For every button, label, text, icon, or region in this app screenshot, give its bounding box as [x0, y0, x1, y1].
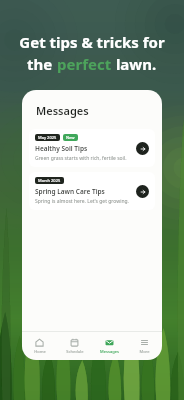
staticText: lawn.	[112, 54, 157, 74]
button[interactable]: Home	[22, 336, 57, 356]
button[interactable]: March 2025	[29, 172, 155, 210]
button[interactable]: Open Spring Lawn Care Tips	[136, 185, 149, 198]
staticText: More	[139, 349, 150, 354]
button[interactable]: Open Healthy Soil Tips	[136, 142, 149, 155]
staticText: Spring Lawn Care Tips	[35, 187, 105, 196]
button[interactable]: May 2025	[29, 129, 155, 167]
staticText: Healthy Soil Tips	[35, 144, 88, 153]
button[interactable]: Schedule	[57, 336, 92, 356]
staticText: New	[66, 135, 75, 140]
button[interactable]: Messages	[92, 336, 127, 356]
staticText: Home	[34, 349, 46, 354]
staticText: Messages	[100, 349, 119, 354]
staticText: Get tips & tricks for	[19, 32, 165, 52]
staticText: Messages	[36, 103, 89, 118]
staticText: May 2025	[38, 135, 57, 140]
staticText: Green grass starts with rich, fertile so…	[35, 155, 127, 162]
staticText: Schedule	[66, 349, 84, 354]
button[interactable]: More	[127, 336, 162, 356]
staticText: the	[27, 54, 57, 74]
staticText: March 2025	[38, 178, 61, 183]
staticText: Spring is almost here. Let's get growing…	[35, 198, 129, 205]
staticText: perfect	[57, 54, 112, 74]
